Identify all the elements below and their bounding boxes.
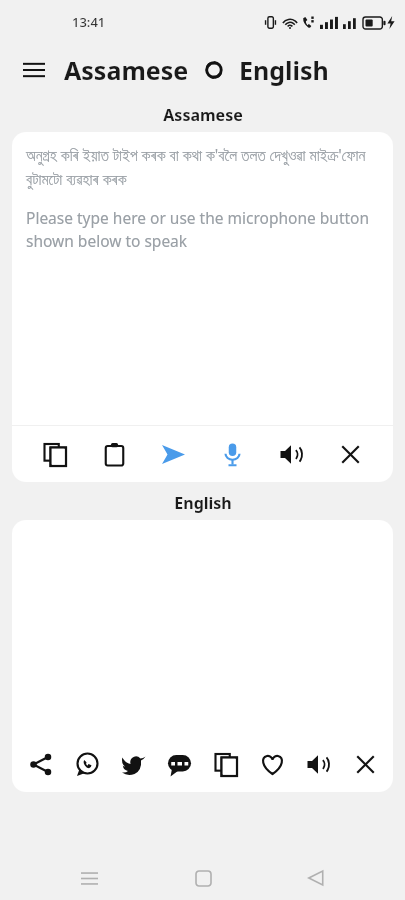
button[interactable]: Swap languages: [199, 55, 229, 85]
button[interactable]: Listen: [269, 432, 313, 476]
button[interactable]: Listen: [296, 742, 340, 786]
button[interactable]: Share: [18, 742, 62, 786]
button[interactable]: Home: [179, 856, 227, 900]
staticText: English: [174, 492, 232, 514]
button[interactable]: Favourite: [250, 742, 294, 786]
button[interactable]: Copy: [204, 742, 248, 786]
staticText: Assamese: [163, 104, 243, 126]
button[interactable]: Recents: [65, 856, 113, 900]
staticText: অনুগ্ৰহ কৰি ইয়াত টাইপ কৰক বা কথা ক'বলৈ …: [26, 144, 379, 189]
button[interactable]: Clear: [343, 742, 387, 786]
button[interactable]: Twitter: [111, 742, 155, 786]
button[interactable]: Speak: [210, 432, 254, 476]
staticText: 13:41: [72, 13, 106, 31]
staticText: Please type here or use the microphone b…: [26, 207, 379, 252]
button[interactable]: Paste: [92, 432, 136, 476]
button[interactable]: Clear: [328, 432, 372, 476]
button[interactable]: Translate: [151, 432, 195, 476]
button[interactable]: English: [239, 53, 329, 87]
button[interactable]: Copy: [33, 432, 77, 476]
button[interactable]: WhatsApp: [65, 742, 109, 786]
button[interactable]: Assamese: [64, 53, 189, 87]
button[interactable]: SMS: [157, 742, 201, 786]
button[interactable]: Menu: [12, 48, 56, 92]
button[interactable]: Back: [292, 856, 340, 900]
